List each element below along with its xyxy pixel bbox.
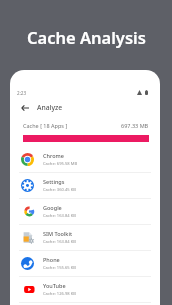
staticText: Phone <box>43 256 60 263</box>
button[interactable]: SIM Toolkit <box>10 225 160 250</box>
staticText: SIM Toolkit <box>43 230 73 237</box>
staticText: Cache: 360.45 KB <box>43 187 76 193</box>
staticText: 2:23 <box>17 90 27 96</box>
staticText: Settings <box>43 178 65 185</box>
staticText: YouTube <box>43 282 66 289</box>
staticText: Google <box>43 204 62 211</box>
staticText: Cache: 163.84 KB <box>43 239 76 245</box>
button[interactable]: Chrome <box>10 147 160 172</box>
button[interactable]: Phone <box>10 251 160 276</box>
staticText: Chrome <box>43 152 64 159</box>
staticText: Cache: 163.84 KB <box>43 213 76 219</box>
staticText: 697.33 MB <box>121 122 149 129</box>
staticText: Cache Analysis <box>27 26 146 48</box>
staticText: Cache: 155.65 KB <box>43 265 76 271</box>
button[interactable]: Google <box>10 199 160 224</box>
button[interactable]: Back <box>18 101 31 114</box>
staticText: Cache [ 18 Apps ] <box>23 122 68 129</box>
staticText: Cache: 695.58 MB <box>43 161 78 167</box>
button[interactable]: Settings <box>10 173 160 198</box>
button[interactable]: YouTube <box>10 277 160 302</box>
staticText: Cache: 126.98 KB <box>43 291 76 297</box>
staticText: Analyze <box>37 103 63 112</box>
